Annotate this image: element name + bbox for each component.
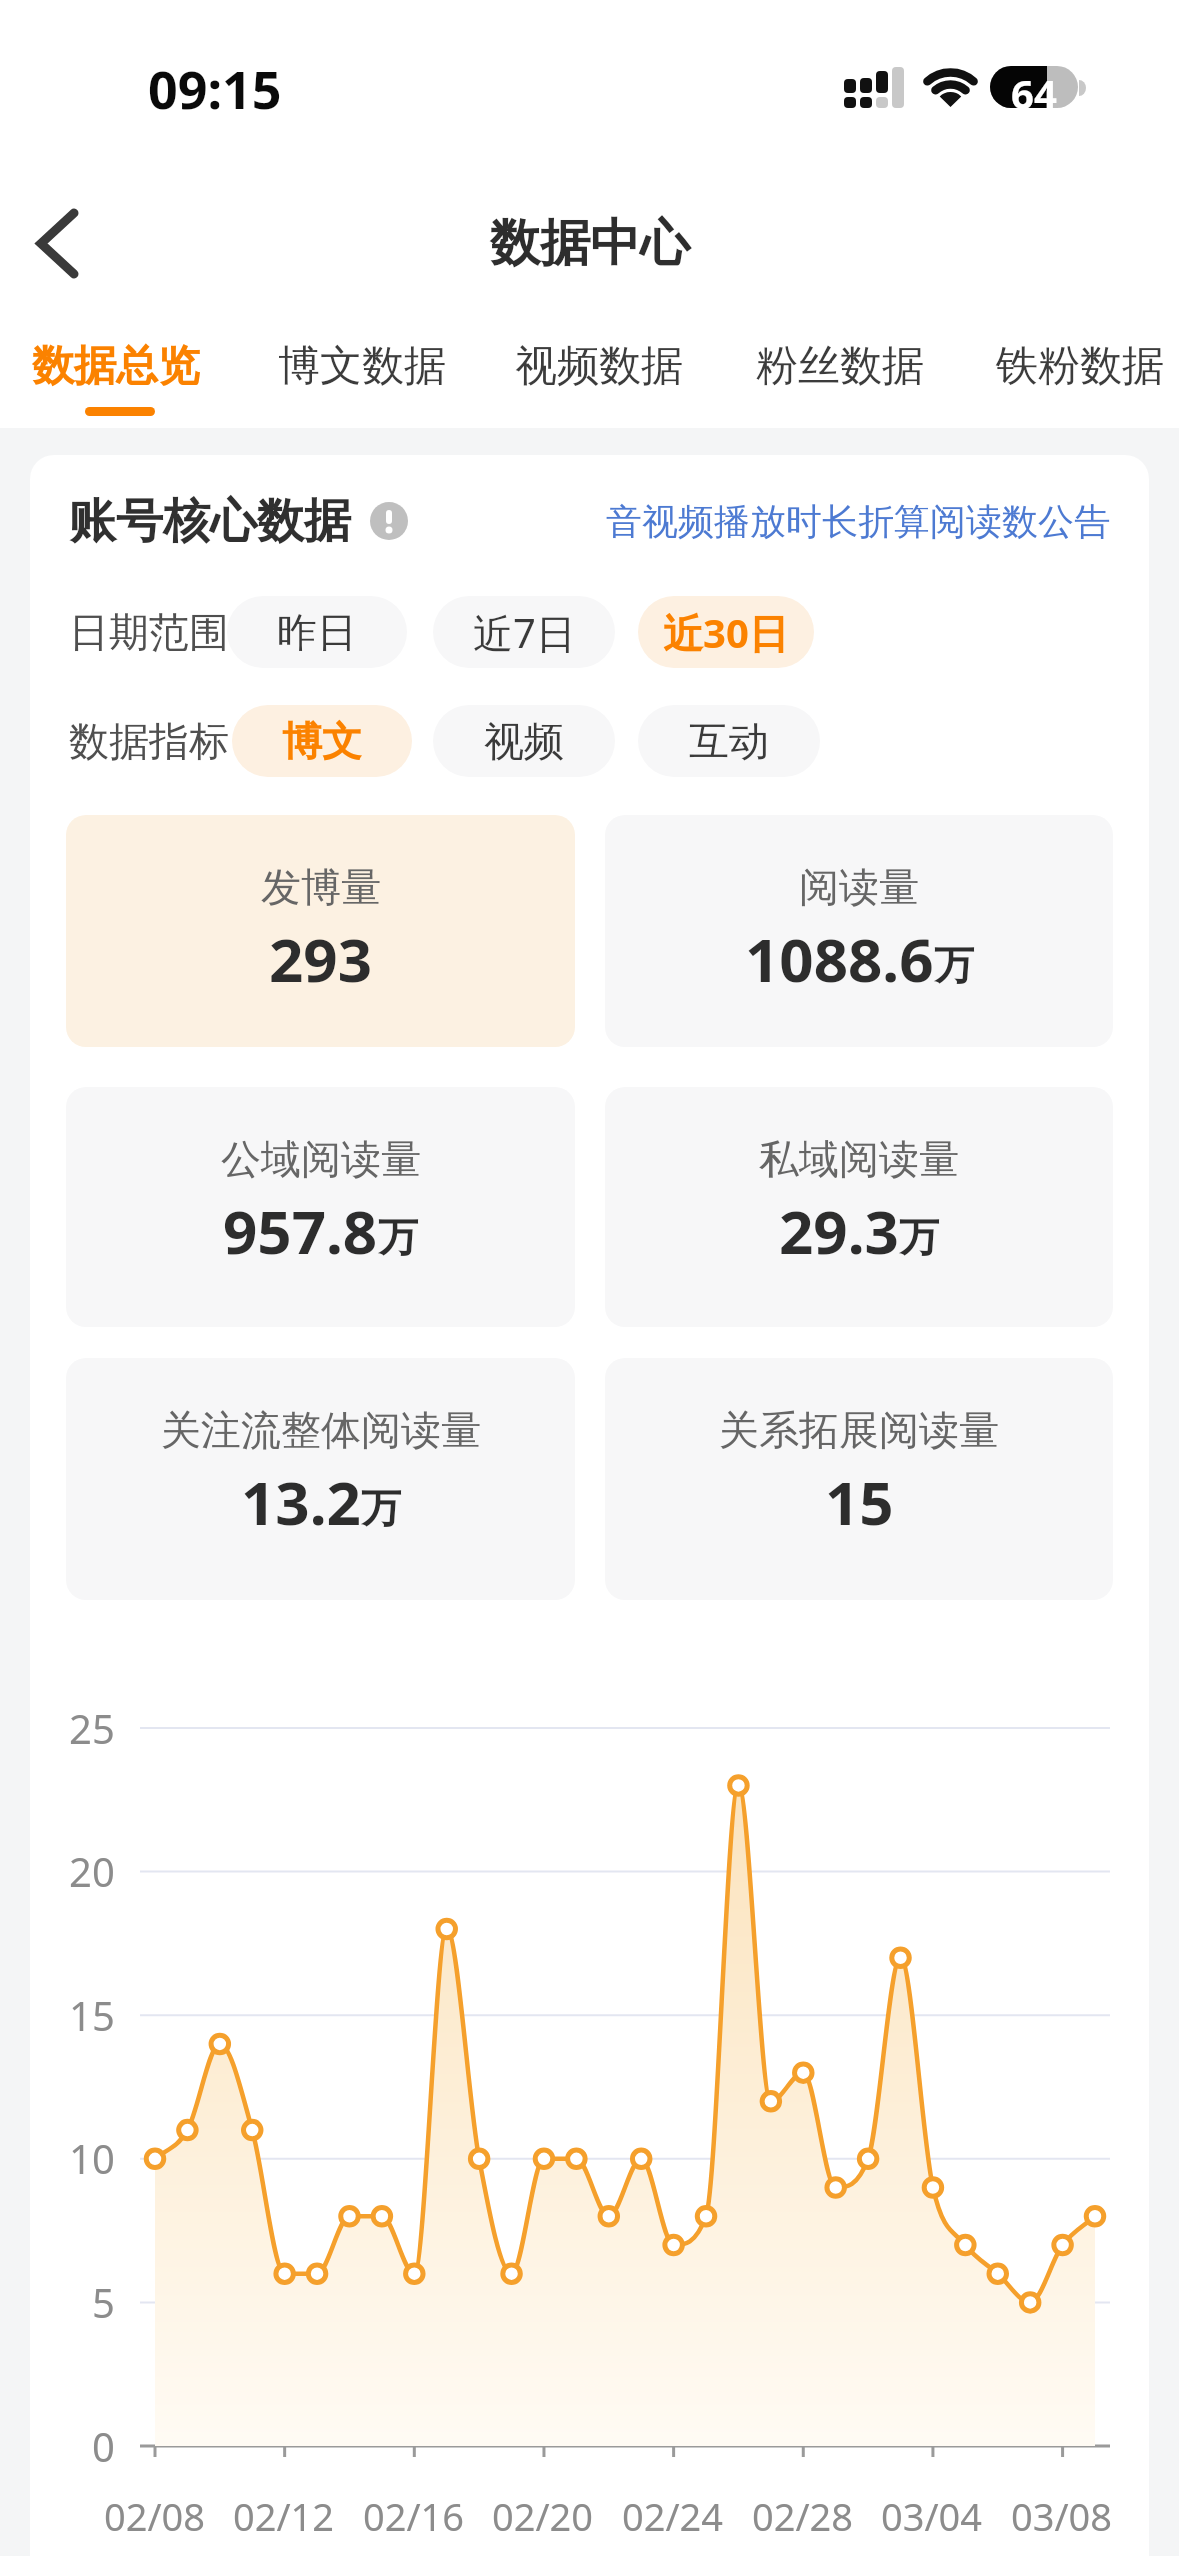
button[interactable]: 近7日 (433, 596, 615, 668)
staticText: 15 (825, 1461, 894, 1541)
staticText: 02/12 (233, 2490, 335, 2542)
button[interactable]: 视频数据 (509, 330, 689, 402)
staticText: 数据总览 (32, 340, 200, 393)
staticText: 02/16 (363, 2490, 465, 2542)
staticText: 1088.6 (745, 918, 934, 998)
staticText: 万 (899, 1212, 939, 1262)
button[interactable]: 粉丝数据 (750, 330, 930, 402)
staticText: 万 (378, 1212, 418, 1262)
button[interactable]: 博文 (232, 705, 412, 777)
button[interactable]: 近30日 (638, 596, 814, 668)
button[interactable]: 发博量 (66, 815, 575, 1047)
button[interactable]: 阅读量 (605, 815, 1113, 1047)
staticText: 293 (269, 918, 372, 998)
staticText: 私域阅读量 (759, 1134, 959, 1184)
staticText: 阅读量 (799, 862, 919, 912)
staticText: 13.2 (241, 1461, 361, 1541)
staticText: 957.8 (223, 1190, 378, 1270)
staticText: 博文数据 (278, 340, 446, 393)
staticText: 日期范围 (69, 607, 229, 657)
button[interactable] (20, 195, 100, 291)
staticText: 博文 (282, 716, 362, 766)
button[interactable]: 私域阅读量 (605, 1087, 1113, 1327)
button[interactable]: 昨日 (227, 596, 407, 668)
staticText: 发博量 (261, 862, 381, 912)
button[interactable]: 关系拓展阅读量 (605, 1358, 1113, 1600)
staticText: 万 (361, 1483, 401, 1533)
staticText: 数据指标 (69, 716, 229, 766)
button[interactable]: 数据总览 (26, 330, 206, 402)
staticText: 万 (934, 940, 974, 990)
staticText: 账号核心数据 (69, 492, 351, 551)
staticText: 25 (69, 1701, 115, 1755)
staticText: 20 (69, 1844, 115, 1898)
staticText: 铁粉数据 (996, 340, 1164, 393)
button[interactable]: 铁粉数据 (990, 330, 1170, 402)
staticText: 互动 (689, 716, 769, 766)
staticText: 10 (69, 2131, 115, 2185)
button[interactable]: 视频 (433, 705, 615, 777)
button[interactable]: 博文数据 (272, 330, 452, 402)
staticText: 02/28 (752, 2490, 854, 2542)
staticText: 15 (69, 1988, 115, 2042)
staticText: 03/04 (881, 2490, 983, 2542)
staticText: 近30日 (663, 605, 789, 660)
staticText: 视频数据 (515, 340, 683, 393)
staticText: 关注流整体阅读量 (161, 1405, 481, 1455)
button[interactable]: 关注流整体阅读量 (66, 1358, 575, 1600)
staticText: 29.3 (779, 1190, 899, 1270)
staticText: 0 (92, 2419, 115, 2473)
button[interactable]: 互动 (638, 705, 820, 777)
staticText: 近7日 (473, 605, 576, 660)
staticText: 关系拓展阅读量 (719, 1405, 999, 1455)
staticText: 64 (1011, 66, 1057, 108)
staticText: 数据中心 (490, 212, 690, 275)
staticText: 03/08 (1011, 2490, 1113, 2542)
staticText: 粉丝数据 (756, 340, 924, 393)
staticText: 02/24 (622, 2490, 724, 2542)
staticText: 5 (92, 2275, 115, 2329)
staticText: 昨日 (277, 607, 357, 657)
staticText: 公域阅读量 (221, 1134, 421, 1184)
staticText: 09:15 (148, 53, 282, 123)
staticText: 音视频播放时长折算阅读数公告 (606, 499, 1110, 544)
button[interactable]: 公域阅读量 (66, 1087, 575, 1327)
staticText: 02/20 (492, 2490, 594, 2542)
staticText: 02/08 (104, 2490, 206, 2542)
staticText: 视频 (484, 716, 564, 766)
